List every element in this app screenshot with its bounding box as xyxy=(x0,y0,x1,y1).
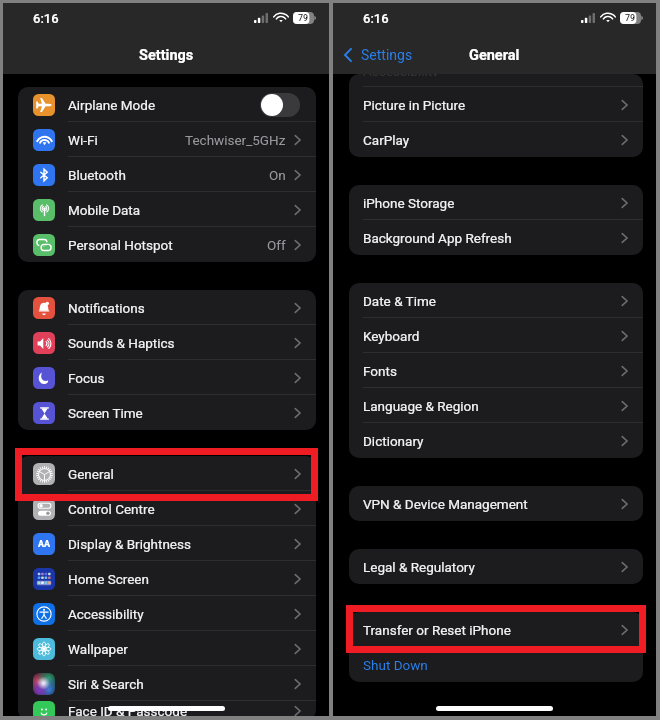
button[interactable]: Bluetooth xyxy=(18,157,316,192)
button[interactable]: Background App Refresh xyxy=(349,220,643,255)
button[interactable]: Screen Time xyxy=(18,395,316,430)
staticText: Notifications xyxy=(68,300,145,316)
button[interactable]: Control Centre xyxy=(18,491,316,526)
button[interactable]: Personal Hotspot xyxy=(18,227,316,262)
button[interactable]: Home Screen xyxy=(18,561,316,596)
button[interactable]: Settings xyxy=(344,47,413,63)
staticText: Accessibility xyxy=(363,74,439,76)
button[interactable]: Wi-Fi xyxy=(18,122,316,157)
staticText: Personal Hotspot xyxy=(68,237,173,253)
staticText: Shut Down xyxy=(363,657,428,673)
staticText: iPhone Storage xyxy=(363,195,455,211)
button[interactable]: Legal & Regulatory xyxy=(349,549,643,584)
staticText: VPN & Device Management xyxy=(363,496,528,512)
staticText: Date & Time xyxy=(363,293,436,309)
staticText: Sounds & Haptics xyxy=(68,335,175,351)
button[interactable]: Focus xyxy=(18,360,316,395)
staticText: 6:16 xyxy=(33,11,59,26)
staticText: Mobile Data xyxy=(68,202,141,218)
staticText: 79 xyxy=(298,13,309,24)
staticText: Transfer or Reset iPhone xyxy=(363,622,511,638)
button[interactable]: iPhone Storage xyxy=(349,185,643,220)
staticText: Display & Brightness xyxy=(68,536,191,552)
staticText: AA xyxy=(38,539,51,550)
button[interactable]: Keyboard xyxy=(349,318,643,353)
button[interactable]: Dictionary xyxy=(349,423,643,458)
staticText: Wi-Fi xyxy=(68,132,98,148)
button[interactable]: Language & Region xyxy=(349,388,643,423)
staticText: Airplane Mode xyxy=(68,97,156,113)
staticText: Screen Time xyxy=(68,405,143,421)
button[interactable]: Fonts xyxy=(349,353,643,388)
staticText: Settings xyxy=(139,47,194,64)
button[interactable]: Mobile Data xyxy=(18,192,316,227)
staticText: Home Screen xyxy=(68,571,149,587)
button[interactable]: Siri & Search xyxy=(18,666,316,701)
button[interactable]: Airplane Mode xyxy=(18,87,316,122)
staticText: Picture in Picture xyxy=(363,97,466,113)
button[interactable]: Picture in Picture xyxy=(349,87,643,122)
button[interactable]: VPN & Device Management xyxy=(349,486,643,521)
button[interactable]: Airplane Mode toggle xyxy=(260,93,300,117)
staticText: General xyxy=(469,47,520,64)
staticText: Techwiser_5GHz xyxy=(185,132,286,148)
staticText: Dictionary xyxy=(363,433,424,449)
staticText: Accessibility xyxy=(68,606,144,622)
button[interactable]: Shut Down xyxy=(349,647,643,682)
staticText: On xyxy=(269,167,286,183)
staticText: Face ID & Passcode xyxy=(68,703,188,719)
staticText: Siri & Search xyxy=(68,676,144,692)
staticText: Keyboard xyxy=(363,328,420,344)
button[interactable]: Sounds & Haptics xyxy=(18,325,316,360)
staticText: General xyxy=(68,466,114,482)
staticText: Off xyxy=(267,237,286,253)
button[interactable]: Notifications xyxy=(18,290,316,325)
staticText: Bluetooth xyxy=(68,167,126,183)
staticText: Control Centre xyxy=(68,501,155,517)
staticText: 79 xyxy=(625,13,636,24)
staticText: Wallpaper xyxy=(68,641,128,657)
staticText: Background App Refresh xyxy=(363,230,512,246)
button[interactable]: Wallpaper xyxy=(18,631,316,666)
staticText: Focus xyxy=(68,370,105,386)
staticText: CarPlay xyxy=(363,132,410,148)
button[interactable]: Transfer or Reset iPhone xyxy=(349,612,643,647)
staticText: Fonts xyxy=(363,363,397,379)
button[interactable]: AA xyxy=(18,526,316,561)
staticText: Legal & Regulatory xyxy=(363,559,475,575)
button[interactable]: Accessibility xyxy=(18,596,316,631)
button[interactable]: CarPlay xyxy=(349,122,643,157)
staticText: Settings xyxy=(361,47,413,63)
staticText: 6:16 xyxy=(363,11,389,26)
button[interactable]: Face ID & Passcode xyxy=(18,701,316,720)
button[interactable]: General xyxy=(18,456,316,491)
button[interactable]: Date & Time xyxy=(349,283,643,318)
staticText: Language & Region xyxy=(363,398,479,414)
